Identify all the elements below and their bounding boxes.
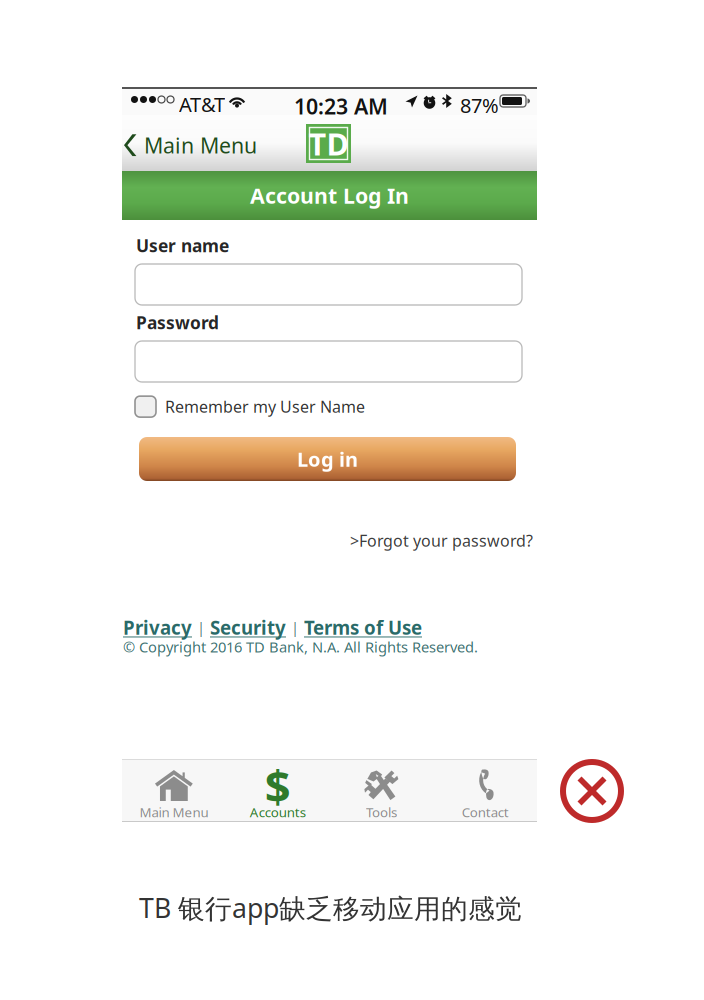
staticText: TD <box>308 123 348 164</box>
staticText: 87% <box>460 92 499 119</box>
staticText: Tools <box>366 803 397 821</box>
button[interactable]: Tools <box>329 759 433 822</box>
staticText: Account Log In <box>250 181 409 210</box>
staticText: Main Menu <box>144 131 257 159</box>
staticText: Remember my User Name <box>165 396 365 417</box>
button[interactable]: Log in <box>122 220 537 759</box>
button[interactable]: Remember my User Name <box>122 220 537 759</box>
button[interactable]: Main Menu <box>122 115 537 171</box>
staticText: Accounts <box>250 803 306 821</box>
button[interactable]: Terms of Use <box>304 615 422 640</box>
staticText: Main Menu <box>139 803 208 821</box>
button[interactable]: $ <box>226 759 330 822</box>
staticText: AT&T <box>179 91 225 118</box>
staticText: | <box>291 618 299 637</box>
button[interactable]: Contact <box>433 759 537 822</box>
staticText: Contact <box>462 803 509 821</box>
staticText: User name <box>136 234 229 257</box>
staticText: TB 银行app缺乏移动应用的感觉 <box>139 890 522 926</box>
staticText: $ <box>265 755 291 816</box>
staticText: | <box>197 618 205 637</box>
staticText: © Copyright 2016 TD Bank, N.A. All Right… <box>123 637 478 656</box>
staticText: Log in <box>297 446 358 472</box>
button[interactable]: Privacy <box>123 615 192 640</box>
staticText: Password <box>136 311 219 334</box>
staticText: Terms of Use <box>304 615 422 640</box>
button[interactable]: >Forgot your password? <box>122 220 537 759</box>
staticText: Security <box>210 615 286 640</box>
button[interactable]: Security <box>210 615 286 640</box>
staticText: 10:23 AM <box>294 92 388 120</box>
button[interactable]: Main Menu <box>122 759 226 822</box>
staticText: >Forgot your password? <box>350 530 533 551</box>
staticText: Privacy <box>123 615 192 640</box>
